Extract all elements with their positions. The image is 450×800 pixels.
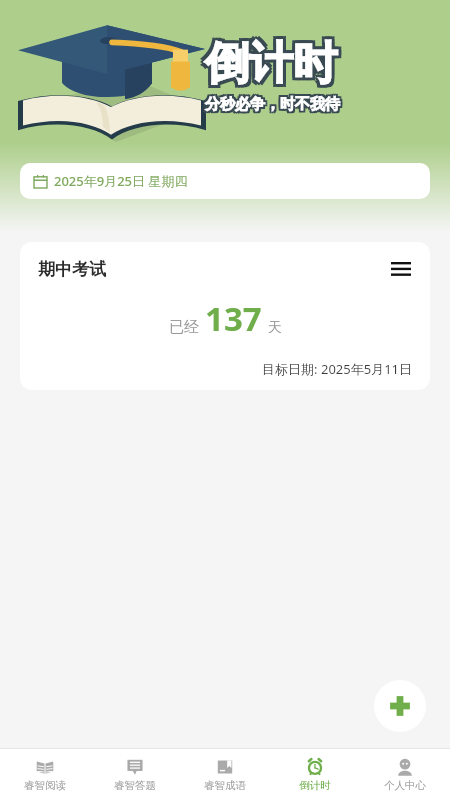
button[interactable]: 个人中心 [360, 749, 450, 800]
staticText: 倒计时 [202, 39, 334, 94]
staticText: 分秒必争，时不我待 [207, 93, 342, 112]
button[interactable]: 睿智阅读 [0, 749, 90, 800]
staticText: 倒计时 [202, 33, 334, 88]
button[interactable]: 倒计时 [270, 749, 360, 800]
staticText: 目标日期: 2025年5月11日 [262, 360, 412, 378]
staticText: 个人中心 [384, 779, 426, 792]
staticText: 分秒必争，时不我待 [205, 97, 340, 116]
staticText: 分秒必争，时不我待 [205, 93, 340, 112]
staticText: 分秒必争，时不我待 [203, 97, 338, 116]
button[interactable]: 睿智成语 [180, 749, 270, 800]
button[interactable]: 2025年9月25日 星期四 [20, 163, 430, 199]
staticText: 睿智阅读 [24, 779, 66, 792]
staticText: 分秒必争，时不我待 [203, 95, 338, 114]
staticText: 倒计时 [205, 36, 337, 91]
staticText: 天 [268, 319, 282, 337]
button[interactable]: 更多选项 [388, 256, 414, 282]
button[interactable]: 添加倒计时 [374, 680, 426, 732]
staticText: 分秒必争，时不我待 [207, 95, 342, 114]
staticText: 2025年9月25日 星期四 [54, 172, 188, 190]
staticText: 期中考试 [38, 259, 106, 280]
button[interactable]: 睿智答题 [90, 749, 180, 800]
staticText: 137 [205, 296, 262, 341]
staticText: 倒计时 [205, 33, 337, 88]
staticText: 已经 [169, 318, 199, 337]
staticText: 倒计时 [299, 779, 331, 792]
staticText: 倒计时 [202, 36, 334, 91]
staticText: 睿智成语 [204, 779, 246, 792]
staticText: 分秒必争，时不我待 [203, 93, 338, 112]
button[interactable]: 期中考试 [20, 242, 430, 390]
staticText: 分秒必争，时不我待 [205, 95, 340, 114]
staticText: 睿智答题 [114, 779, 156, 792]
staticText: 分秒必争，时不我待 [207, 97, 342, 116]
staticText: 倒计时 [208, 36, 340, 91]
staticText: 倒计时 [208, 33, 340, 88]
staticText: 倒计时 [205, 39, 337, 94]
staticText: 倒计时 [208, 39, 340, 94]
